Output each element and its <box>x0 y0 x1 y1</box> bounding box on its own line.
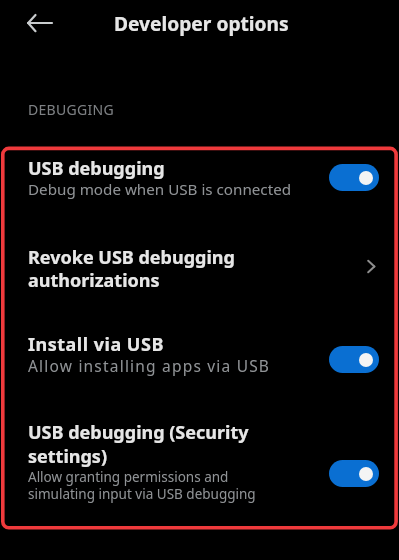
button[interactable] <box>26 13 54 33</box>
staticText: Debug mode when USB is connected <box>28 179 292 200</box>
button[interactable] <box>329 460 379 487</box>
staticText: Developer options <box>114 10 289 36</box>
staticText: USB debugging <box>28 156 165 181</box>
button[interactable] <box>0 408 399 520</box>
button[interactable] <box>0 150 399 212</box>
staticText: DEBUGGING <box>28 100 114 119</box>
button[interactable] <box>0 228 399 308</box>
staticText: Allow installing apps via USB <box>28 355 271 376</box>
button[interactable] <box>329 346 379 373</box>
button[interactable] <box>0 318 399 388</box>
staticText: Revoke USB debugging authorizations <box>28 245 235 292</box>
staticText: USB debugging (Security settings) <box>28 420 249 468</box>
staticText: Install via USB <box>28 332 164 357</box>
staticText: Allow granting permissions and simulatin… <box>28 468 256 503</box>
button[interactable] <box>329 164 379 191</box>
